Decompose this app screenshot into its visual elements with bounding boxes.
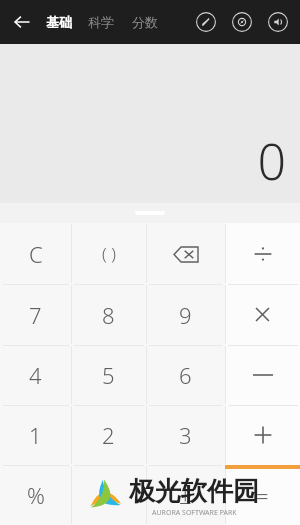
staticText: 5 — [102, 360, 115, 390]
button[interactable]: 4 — [0, 345, 71, 405]
staticText: 科学 — [88, 14, 114, 30]
button[interactable]: Backspace — [146, 223, 225, 284]
staticText: ± — [179, 480, 192, 510]
staticText: = — [256, 480, 269, 510]
button[interactable] — [225, 345, 300, 405]
staticText: % — [27, 480, 45, 510]
button[interactable]: 5 — [71, 345, 146, 405]
other: Backspace — [171, 239, 201, 269]
staticText: 基础 — [46, 14, 72, 30]
button[interactable]: Edit — [190, 6, 222, 38]
staticText: 2 — [102, 420, 115, 450]
staticText: 3 — [179, 420, 192, 450]
button[interactable]: 7 — [0, 284, 71, 345]
staticText: 0 — [257, 127, 286, 195]
staticText: 7 — [29, 300, 42, 330]
button[interactable] — [225, 405, 300, 465]
button[interactable]: ± — [146, 465, 225, 525]
staticText: ( ) — [102, 242, 116, 265]
staticText: . — [106, 480, 112, 510]
button[interactable]: 1 — [0, 405, 71, 465]
staticText: 8 — [102, 300, 115, 330]
staticText: 分数 — [132, 14, 158, 30]
button[interactable]: = — [225, 465, 300, 525]
button[interactable]: 2 — [71, 405, 146, 465]
button[interactable]: History — [226, 6, 258, 38]
staticText: 4 — [29, 360, 42, 390]
button[interactable]: 6 — [146, 345, 225, 405]
staticText: 9 — [179, 300, 192, 330]
staticText: C — [29, 239, 43, 269]
button[interactable]: Sound — [262, 6, 294, 38]
button[interactable] — [225, 223, 300, 284]
button[interactable] — [225, 284, 300, 345]
staticText: 6 — [179, 360, 192, 390]
button[interactable]: 9 — [146, 284, 225, 345]
button[interactable]: 基础 — [44, 8, 74, 36]
button[interactable]: 8 — [71, 284, 146, 345]
button[interactable]: % — [0, 465, 71, 525]
staticText: 极光软件园 — [129, 475, 259, 508]
button[interactable]: 科学 — [86, 8, 116, 36]
button[interactable]: C — [0, 223, 71, 284]
button[interactable]: 分数 — [130, 8, 160, 36]
staticText: AURORA SOFTWARE PARK — [152, 508, 237, 518]
button[interactable]: ( ) — [71, 223, 146, 284]
button[interactable]: Back — [6, 6, 38, 38]
button[interactable]: 3 — [146, 405, 225, 465]
staticText: 1 — [29, 420, 42, 450]
button[interactable]: . — [71, 465, 146, 525]
